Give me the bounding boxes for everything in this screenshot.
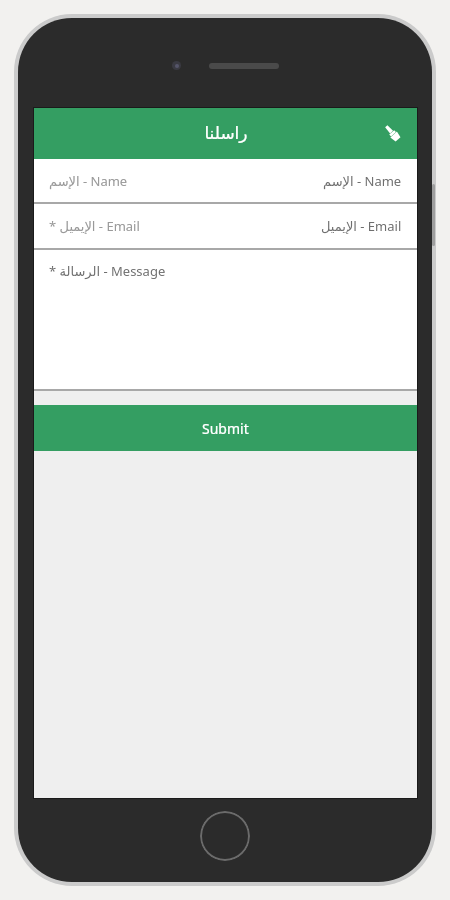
button[interactable]: Submit [33, 405, 418, 451]
button[interactable]: الإسم - Name [33, 159, 418, 202]
staticText: راسلنا [204, 123, 248, 143]
staticText: الإيميل - Email [321, 217, 402, 235]
button[interactable]: * الرسالة - Message [33, 250, 418, 389]
staticText: Submit [202, 419, 249, 438]
staticText: الإسم - Name [323, 172, 402, 190]
button[interactable]: Theme [372, 113, 412, 153]
staticText: الإسم - Name [49, 172, 128, 190]
staticText: * الإيميل - Email [49, 217, 140, 235]
button[interactable]: * الإيميل - Email [33, 204, 418, 248]
staticText: * الرسالة - Message [49, 262, 166, 280]
